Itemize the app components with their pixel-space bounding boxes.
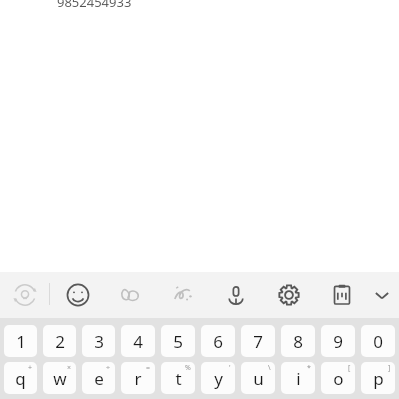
staticText: *	[307, 363, 311, 373]
staticText: 6	[213, 330, 223, 353]
button[interactable]: 9852454933	[57, 0, 132, 11]
button[interactable]: r	[121, 362, 155, 394]
staticText: =	[146, 363, 151, 373]
button[interactable]: 6	[201, 325, 235, 357]
button[interactable]: Handwriting	[166, 278, 200, 312]
button[interactable]: Voice input	[219, 278, 253, 312]
staticText: 5	[173, 330, 183, 353]
staticText: ]	[388, 363, 391, 373]
staticText: p	[373, 367, 384, 390]
staticText: 8	[293, 330, 303, 353]
staticText: ×	[67, 363, 72, 373]
button[interactable]: 0	[361, 325, 395, 357]
button[interactable]: u	[241, 362, 275, 394]
button[interactable]: 1	[4, 325, 37, 357]
button[interactable]: 2	[43, 325, 76, 357]
staticText: +	[28, 363, 33, 373]
staticText: [	[348, 363, 351, 373]
button[interactable]: 3	[82, 325, 115, 357]
staticText: 4	[133, 330, 143, 353]
button[interactable]: Keyboard settings	[272, 278, 306, 312]
staticText: 1	[16, 330, 26, 353]
staticText: y	[214, 367, 223, 390]
staticText: ÷	[106, 363, 111, 373]
staticText: 9852454933	[57, 0, 132, 11]
staticText: 3	[94, 330, 104, 353]
staticText: 0	[373, 330, 383, 353]
button[interactable]: q	[4, 362, 37, 394]
staticText: 7	[253, 330, 263, 353]
staticText: q	[15, 367, 26, 390]
button[interactable]: Predictive text	[8, 278, 42, 312]
staticText: '	[229, 363, 231, 373]
button[interactable]: Stickers	[113, 278, 147, 312]
button[interactable]: o	[321, 362, 355, 394]
staticText: r	[134, 367, 142, 390]
staticText: \	[268, 363, 271, 373]
button[interactable]: p	[361, 362, 395, 394]
button[interactable]: t	[161, 362, 195, 394]
staticText: e	[94, 367, 104, 390]
staticText: o	[333, 367, 344, 390]
staticText: 9	[333, 330, 343, 353]
staticText: %	[185, 363, 191, 373]
button[interactable]: Hide keyboard	[365, 278, 399, 312]
button[interactable]: 7	[241, 325, 275, 357]
button[interactable]: Emoji	[61, 278, 95, 312]
button[interactable]: 4	[121, 325, 155, 357]
button[interactable]: y	[201, 362, 235, 394]
staticText: i	[296, 367, 301, 390]
button[interactable]: w	[43, 362, 76, 394]
button[interactable]: Clipboard	[325, 278, 359, 312]
staticText: w	[53, 367, 67, 390]
button[interactable]: 5	[161, 325, 195, 357]
staticText: 2	[55, 330, 65, 353]
staticText: t	[175, 367, 182, 390]
staticText: u	[253, 367, 264, 390]
button[interactable]: 8	[281, 325, 315, 357]
button[interactable]: e	[82, 362, 115, 394]
button[interactable]: i	[281, 362, 315, 394]
button[interactable]: 9	[321, 325, 355, 357]
